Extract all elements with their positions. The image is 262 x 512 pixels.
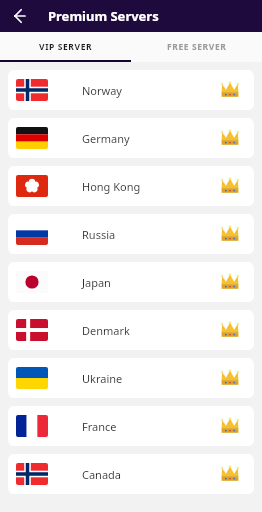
staticText: Japan [82, 275, 111, 290]
button[interactable]: Germany [8, 118, 254, 158]
button[interactable]: Norway [8, 70, 254, 110]
button[interactable]: FREE SERVER [131, 32, 262, 62]
button[interactable]: Hong Kong [8, 166, 254, 206]
button[interactable]: VIP SERVER [0, 32, 131, 62]
button[interactable]: Ukraine [8, 358, 254, 398]
staticText: FREE SERVER [167, 41, 227, 53]
staticText: Norway [82, 83, 122, 98]
button[interactable]: Back [8, 4, 32, 28]
button[interactable]: France [8, 406, 254, 446]
staticText: Premium Servers [48, 7, 159, 25]
staticText: France [82, 419, 117, 434]
button[interactable]: Canada [8, 454, 254, 494]
button[interactable]: Russia [8, 214, 254, 254]
button[interactable]: Japan [8, 262, 254, 302]
staticText: VIP SERVER [39, 41, 93, 53]
staticText: Ukraine [82, 371, 123, 386]
staticText: Germany [82, 131, 130, 146]
button[interactable]: Denmark [8, 310, 254, 350]
staticText: Denmark [82, 323, 130, 338]
staticText: Hong Kong [82, 179, 141, 194]
staticText: Canada [82, 467, 122, 482]
staticText: Russia [82, 227, 116, 242]
